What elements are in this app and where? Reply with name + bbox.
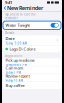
button[interactable]: Date [3, 35, 61, 45]
staticText: Suggestions [5, 54, 22, 57]
button[interactable]: Review report [3, 74, 61, 82]
button[interactable]: Flagged [51, 23, 59, 28]
button[interactable]: New Reminder [2, 5, 45, 11]
staticText: Tap a field to edit the reminder [5, 13, 36, 20]
staticText: Date [5, 36, 14, 41]
staticText: Buy coffee [5, 83, 24, 88]
staticText: 9:41 [5, 0, 12, 5]
staticText: Details [5, 31, 14, 35]
staticText: Tomorrow 6 PM [5, 63, 26, 67]
staticText: Today 7 PM [5, 71, 20, 75]
staticText: Pick up medicine [5, 57, 34, 63]
button[interactable]: Lago Di Colore [3, 46, 61, 52]
staticText: Lago Di Colore [10, 46, 36, 52]
staticText: > [57, 39, 59, 42]
staticText: Call mom [5, 65, 23, 71]
staticText: Today, 9:00 AM [5, 42, 26, 45]
button[interactable]: Buy coffee [3, 82, 61, 89]
staticText: Review report [5, 73, 29, 78]
staticText: Friday 10 AM [5, 79, 22, 82]
button[interactable]: Pick up medicine [3, 58, 61, 66]
button[interactable]: Call mom [3, 66, 61, 74]
staticText: New Reminder [7, 4, 43, 12]
staticText: Water Tonight [5, 23, 29, 28]
